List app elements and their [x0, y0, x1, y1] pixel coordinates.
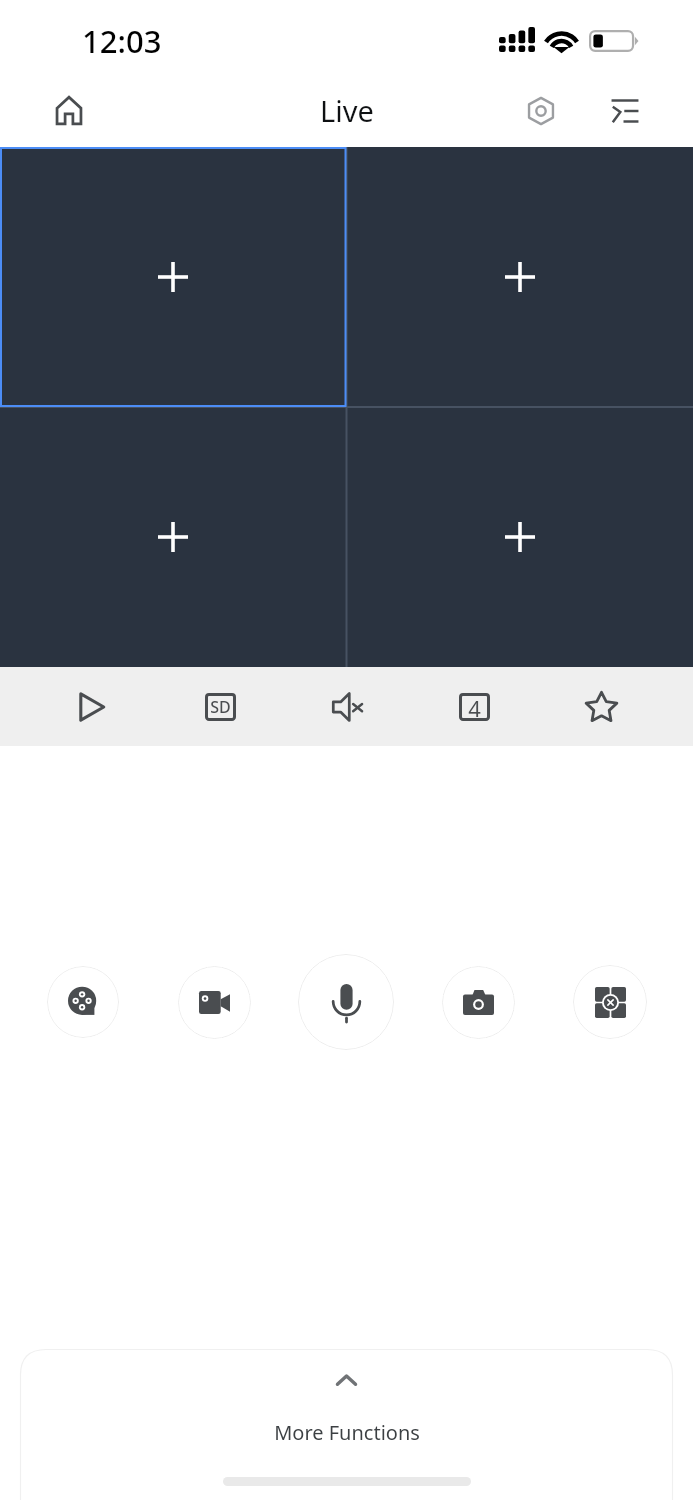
staticText: More Functions	[274, 1419, 420, 1446]
button[interactable]: Split screen 4	[411, 667, 538, 746]
button[interactable]: Record video	[178, 966, 251, 1039]
button[interactable]: Play	[28, 667, 156, 746]
button[interactable]: Add camera	[346, 407, 693, 667]
button[interactable]: More Functions	[20, 1349, 673, 1500]
button[interactable]: Two way talk	[47, 966, 119, 1038]
staticText: Live	[320, 91, 374, 130]
button[interactable]: Home	[29, 74, 109, 147]
button[interactable]: Microphone	[298, 954, 394, 1050]
button[interactable]: Mute	[284, 667, 411, 746]
button[interactable]: Stream quality SD	[156, 667, 284, 746]
staticText: SD	[210, 696, 231, 718]
button[interactable]: Favorite	[538, 667, 665, 746]
button[interactable]: Device list	[585, 74, 665, 147]
button[interactable]: Close all	[573, 965, 647, 1039]
button[interactable]: Add camera	[346, 147, 693, 407]
button[interactable]: Add camera	[0, 407, 346, 667]
staticText: 4	[468, 693, 481, 721]
button[interactable]: Add camera	[0, 147, 346, 407]
button[interactable]: Take snapshot	[442, 966, 515, 1039]
staticText: 12:03	[82, 20, 162, 62]
button[interactable]: Settings	[501, 74, 581, 147]
